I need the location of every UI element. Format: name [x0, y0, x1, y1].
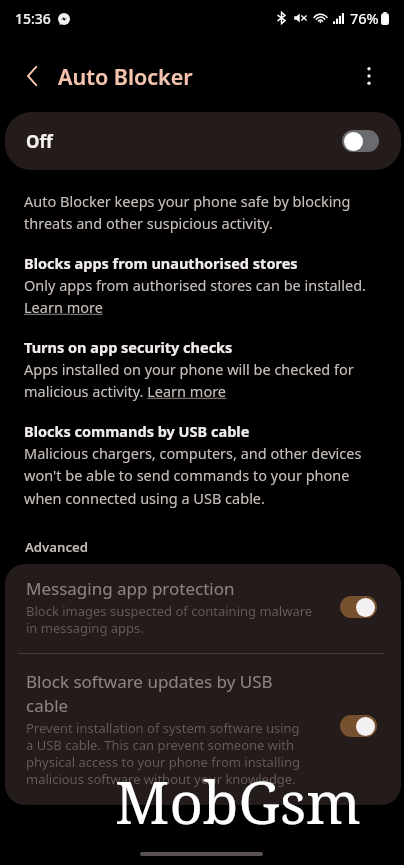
button[interactable]: Navigate up — [12, 56, 52, 96]
staticText: Block software updates by USB cable — [26, 670, 273, 717]
staticText: 15:36 — [15, 9, 51, 28]
staticText: Messaging app protection — [26, 577, 235, 600]
button[interactable]: On — [340, 596, 377, 618]
staticText: Blocks apps from unauthorised stores — [24, 253, 298, 273]
staticText: Auto Blocker — [58, 62, 193, 91]
button[interactable]: More options — [349, 56, 389, 96]
staticText: Only apps from authorised stores can be … — [24, 275, 386, 317]
button[interactable]: Messaging app protection — [5, 564, 401, 653]
staticText: 76% — [350, 8, 379, 28]
staticText: Malicious chargers, computers, and other… — [24, 443, 386, 508]
staticText: Apps installed on your phone will be che… — [24, 359, 386, 401]
staticText: MobGsm — [115, 762, 361, 841]
button[interactable]: On — [340, 715, 377, 737]
staticText: Turns on app security checks — [24, 337, 233, 357]
button[interactable]: Off — [342, 130, 379, 152]
button[interactable]: Block software updates by USB cable — [5, 654, 401, 801]
staticText: Blocks commands by USB cable — [24, 421, 250, 441]
staticText: Auto Blocker keeps your phone safe by bl… — [24, 191, 386, 233]
staticText: Block images suspected of containing mal… — [26, 602, 313, 637]
staticText: Prevent installation of system software … — [26, 719, 300, 788]
staticText: Advanced — [25, 538, 89, 556]
button[interactable]: Off — [5, 112, 401, 170]
staticText: Off — [26, 130, 53, 153]
